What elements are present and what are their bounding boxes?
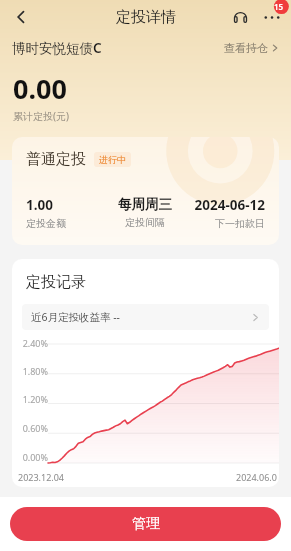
staticText: 定投记录 [26,273,86,292]
staticText: 近6月定投收益率 -- [31,310,120,324]
staticText: 2.40% [16,337,48,349]
button[interactable]: Customer service [227,4,253,30]
button[interactable]: 管理 [10,507,281,541]
staticText: 1.80% [16,365,48,377]
staticText: 定投详情 [116,8,176,27]
staticText: 1.20% [16,393,48,405]
button[interactable]: 近6月定投收益率 -- [22,304,269,330]
staticText: 普通定投 [26,150,86,169]
staticText: 下一扣款日 [185,217,265,230]
staticText: 累计定投(元) [13,109,69,123]
staticText: 2023.12.04 [18,471,65,483]
staticText: 博时安悦短债C [12,39,102,57]
staticText: 0.60% [16,422,48,434]
staticText: 1.00 [26,196,105,214]
staticText: 管理 [132,515,160,533]
staticText: 0.00 [13,70,67,107]
staticText: 每周周三 [105,196,185,213]
staticText: 0.00% [16,451,48,463]
button[interactable]: 博时安悦短债C [0,34,291,62]
button[interactable]: More options [259,4,285,30]
staticText: 15 [274,1,284,12]
staticText: 定投间隔 [105,216,185,229]
button[interactable]: Back [6,2,36,32]
staticText: 2024.06.0 [236,471,277,483]
staticText: 定投金额 [26,217,105,230]
staticText: 查看持仓 [224,41,268,55]
staticText: 2024-06-12 [185,196,265,214]
button[interactable]: 普通定投 [12,137,279,245]
staticText: 进行中 [99,154,126,165]
